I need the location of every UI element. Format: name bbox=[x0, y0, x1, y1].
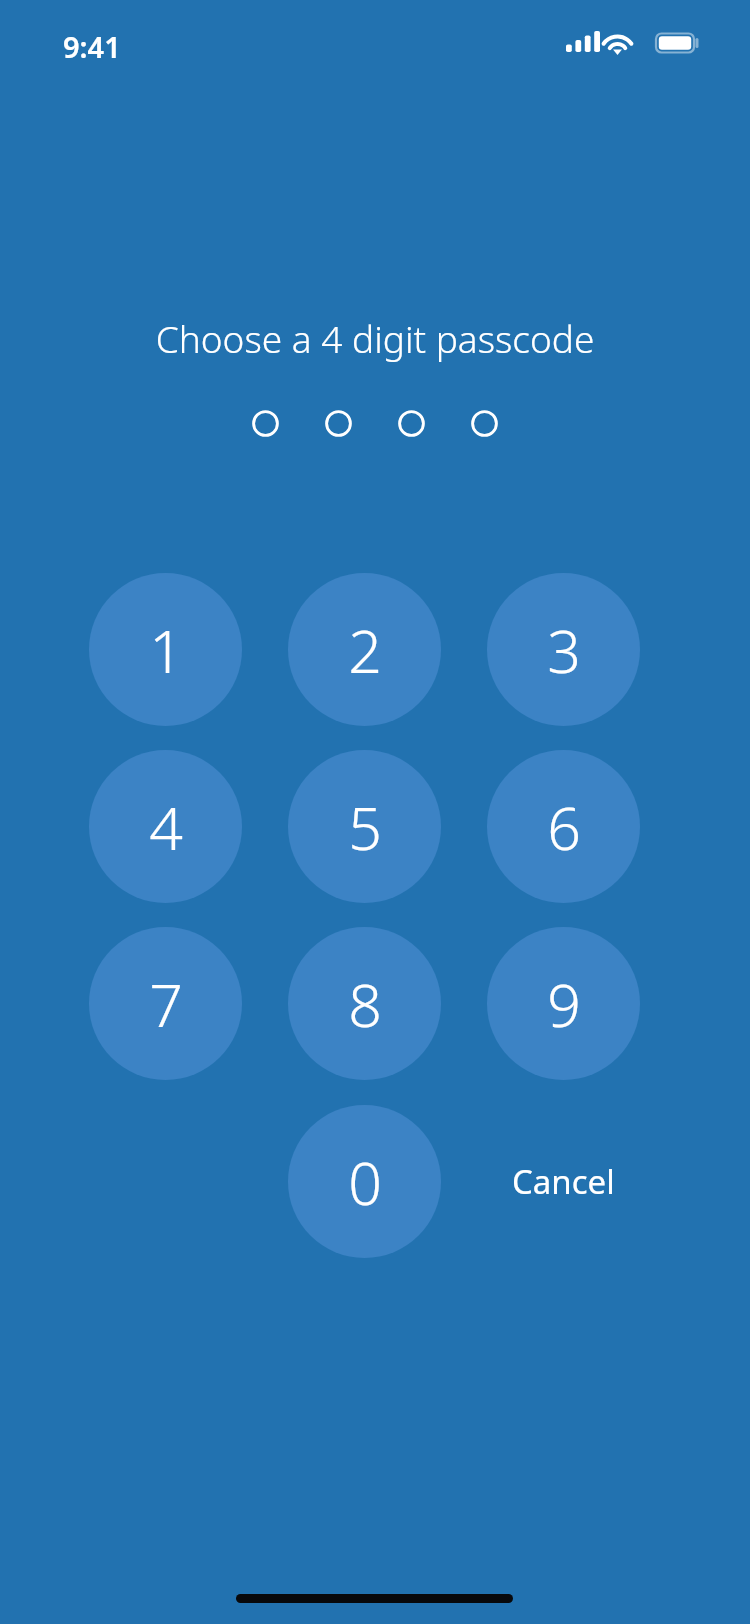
button[interactable]: 1 bbox=[89, 573, 242, 726]
button[interactable]: 8 bbox=[288, 927, 441, 1080]
staticText: 7 bbox=[149, 964, 183, 1044]
button[interactable]: 2 bbox=[288, 573, 441, 726]
staticText: 2 bbox=[348, 610, 382, 690]
staticText: 9 bbox=[547, 964, 581, 1044]
button[interactable]: 4 bbox=[89, 750, 242, 903]
staticText: Cancel bbox=[512, 1159, 615, 1204]
staticText: 3 bbox=[547, 610, 581, 690]
button[interactable]: 3 bbox=[487, 573, 640, 726]
button[interactable]: 6 bbox=[487, 750, 640, 903]
staticText: 8 bbox=[348, 964, 382, 1044]
button[interactable]: 0 bbox=[288, 1105, 441, 1258]
button[interactable]: 7 bbox=[89, 927, 242, 1080]
staticText: 0 bbox=[348, 1142, 382, 1222]
button[interactable]: 5 bbox=[288, 750, 441, 903]
staticText: 4 bbox=[149, 787, 183, 867]
staticText: 9:41 bbox=[63, 27, 121, 66]
button[interactable]: Cancel bbox=[473, 1143, 653, 1219]
button[interactable]: 9 bbox=[487, 927, 640, 1080]
staticText: 5 bbox=[348, 787, 382, 867]
staticText: 1 bbox=[149, 610, 183, 690]
other: Signal, Wi-Fi and battery status bbox=[566, 29, 696, 59]
staticText: Choose a 4 digit passcode bbox=[0, 313, 750, 363]
staticText: 6 bbox=[547, 787, 581, 867]
